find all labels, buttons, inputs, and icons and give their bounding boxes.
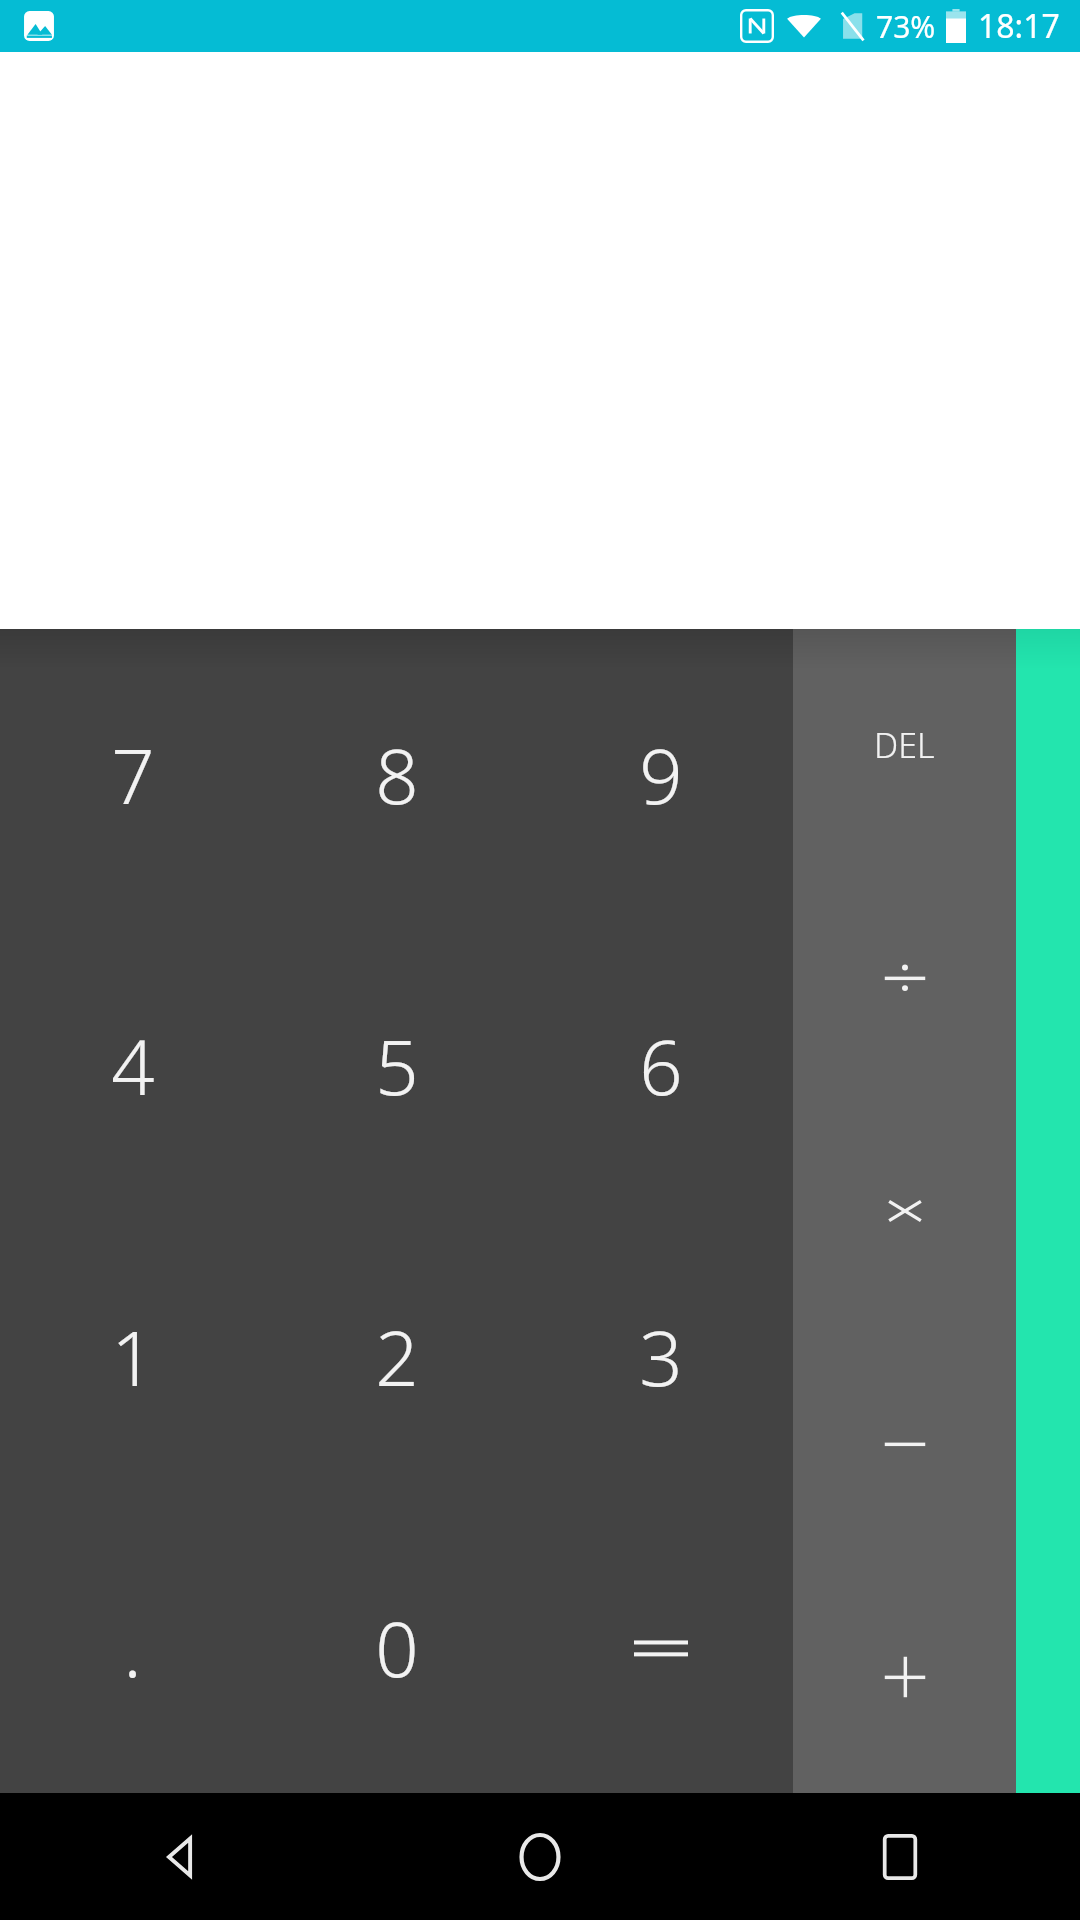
staticText: 18:17 xyxy=(978,4,1060,48)
staticText: DEL xyxy=(874,722,935,768)
staticText: 6 xyxy=(639,1014,683,1118)
button[interactable]: 0 xyxy=(265,1502,529,1793)
button[interactable]: 1 xyxy=(0,1211,265,1502)
staticText: 9 xyxy=(639,723,683,827)
button[interactable]: Subtract xyxy=(793,1327,1016,1560)
staticText: 3 xyxy=(639,1305,683,1409)
button[interactable]: Multiply xyxy=(793,1094,1016,1327)
button[interactable]: Divide xyxy=(793,861,1016,1094)
staticText: 2 xyxy=(375,1305,419,1409)
staticText: 73% xyxy=(876,6,936,47)
button[interactable]: Add xyxy=(793,1560,1016,1793)
staticText: 5 xyxy=(375,1014,419,1118)
button[interactable]: . xyxy=(0,1502,265,1793)
staticText: 7 xyxy=(111,723,155,827)
button[interactable]: Back xyxy=(0,1793,360,1920)
button[interactable]: 9 xyxy=(529,629,793,920)
button[interactable]: DEL xyxy=(793,629,1016,861)
staticText: . xyxy=(123,1596,142,1700)
button[interactable]: 3 xyxy=(529,1211,793,1502)
staticText: 0 xyxy=(375,1596,419,1700)
staticText: 1 xyxy=(111,1305,155,1409)
button[interactable]: 4 xyxy=(0,920,265,1211)
button[interactable]: Home xyxy=(360,1793,720,1920)
staticText: 4 xyxy=(111,1014,155,1118)
button[interactable]: Recent apps xyxy=(720,1793,1080,1920)
button[interactable]: 2 xyxy=(265,1211,529,1502)
button[interactable]: 7 xyxy=(0,629,265,920)
button[interactable]: 6 xyxy=(529,920,793,1211)
button[interactable]: 5 xyxy=(265,920,529,1211)
button[interactable] xyxy=(529,1502,793,1793)
staticText: 8 xyxy=(375,723,419,827)
button[interactable]: 8 xyxy=(265,629,529,920)
